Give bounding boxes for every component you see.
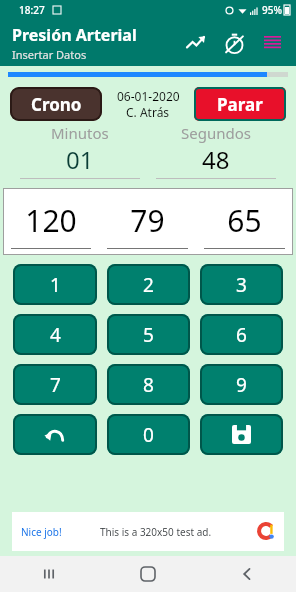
button[interactable]: Nice job! bbox=[12, 512, 284, 551]
button[interactable]: 6 bbox=[200, 314, 283, 355]
staticText: Crono bbox=[31, 93, 82, 116]
staticText: 2 bbox=[143, 272, 154, 298]
button[interactable]: 79 bbox=[107, 188, 188, 255]
staticText: 3 bbox=[236, 272, 247, 298]
button[interactable]: 4 bbox=[13, 314, 97, 355]
staticText: 120 bbox=[25, 200, 77, 241]
staticText: Nice job! bbox=[21, 525, 62, 539]
staticText: 79 bbox=[130, 200, 165, 241]
staticText: C. Atrás bbox=[126, 104, 170, 120]
staticText: 1 bbox=[50, 272, 61, 298]
button[interactable]: 120 bbox=[11, 188, 91, 255]
button[interactable]: 9 bbox=[200, 364, 283, 405]
staticText: 0 bbox=[143, 422, 154, 448]
staticText: 5 bbox=[143, 322, 154, 348]
staticText: 9 bbox=[236, 372, 247, 398]
button[interactable]: Atrás bbox=[197, 556, 296, 592]
button[interactable]: Inicio bbox=[98, 556, 197, 592]
staticText: 4 bbox=[50, 322, 61, 348]
button[interactable]: Cronómetro desactivado bbox=[218, 27, 250, 59]
button[interactable]: 8 bbox=[107, 364, 190, 405]
staticText: This is a 320x50 test ad. bbox=[100, 525, 212, 539]
button[interactable]: Gráfica bbox=[180, 27, 212, 59]
staticText: Minutos bbox=[51, 123, 109, 143]
staticText: Parar bbox=[217, 93, 263, 116]
staticText: 8 bbox=[143, 372, 154, 398]
button[interactable]: Recientes bbox=[0, 556, 98, 592]
staticText: 18:27 bbox=[19, 3, 45, 17]
staticText: Presión Arterial bbox=[12, 24, 137, 46]
staticText: 95% bbox=[262, 3, 282, 17]
button[interactable]: 7 bbox=[13, 364, 97, 405]
button[interactable]: 5 bbox=[107, 314, 190, 355]
button[interactable]: 65 bbox=[204, 188, 285, 255]
staticText: 65 bbox=[227, 200, 262, 241]
button[interactable]: Menú bbox=[256, 27, 288, 59]
staticText: 01 bbox=[66, 143, 94, 176]
staticText: 48 bbox=[202, 143, 230, 176]
button[interactable]: 2 bbox=[107, 264, 190, 305]
staticText: Insertar Datos bbox=[12, 47, 87, 62]
button[interactable]: Deshacer bbox=[13, 414, 97, 455]
button[interactable]: Crono bbox=[10, 87, 102, 121]
button[interactable]: 3 bbox=[200, 264, 283, 305]
staticText: 7 bbox=[50, 372, 61, 398]
button[interactable]: 1 bbox=[13, 264, 97, 305]
button[interactable]: Parar bbox=[194, 87, 286, 121]
staticText: 06-01-2020 bbox=[117, 88, 180, 104]
button[interactable]: Guardar bbox=[200, 414, 283, 455]
staticText: Segundos bbox=[181, 123, 251, 143]
button[interactable]: 0 bbox=[107, 414, 190, 455]
staticText: 6 bbox=[236, 322, 247, 348]
